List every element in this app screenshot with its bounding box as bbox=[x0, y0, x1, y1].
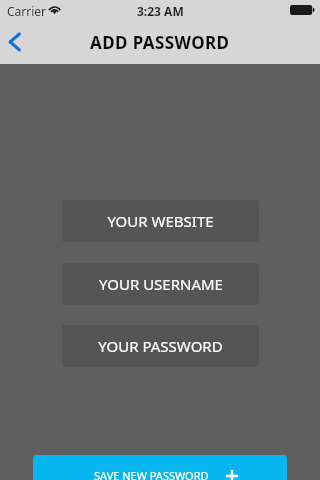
button[interactable]: YOUR PASSWORD bbox=[62, 325, 259, 367]
staticText: Carrier bbox=[7, 3, 47, 19]
other: Battery full bbox=[290, 5, 315, 15]
staticText: 3:23 AM bbox=[137, 3, 184, 19]
staticText: SAVE NEW PASSWORD bbox=[94, 468, 209, 480]
button[interactable]: Back bbox=[0, 22, 44, 66]
button[interactable]: YOUR USERNAME bbox=[62, 263, 259, 305]
staticText: YOUR PASSWORD bbox=[98, 336, 223, 356]
staticText: YOUR USERNAME bbox=[99, 274, 223, 294]
button[interactable]: YOUR WEBSITE bbox=[62, 200, 259, 242]
staticText: YOUR WEBSITE bbox=[107, 211, 214, 231]
staticText: ADD PASSWORD bbox=[90, 31, 230, 54]
button[interactable]: SAVE NEW PASSWORD bbox=[33, 455, 287, 480]
